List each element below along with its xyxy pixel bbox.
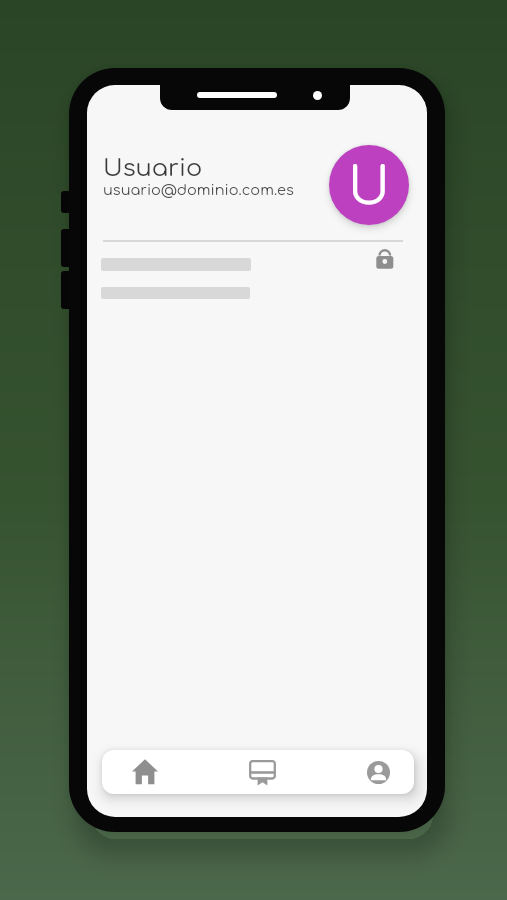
button[interactable] <box>128 755 162 789</box>
staticText: U <box>348 159 390 216</box>
staticText: usuario@dominio.com.es <box>103 182 294 198</box>
button[interactable] <box>361 755 395 789</box>
button[interactable]: U <box>329 145 409 225</box>
button[interactable] <box>245 755 279 789</box>
staticText: Usuario <box>103 155 203 182</box>
